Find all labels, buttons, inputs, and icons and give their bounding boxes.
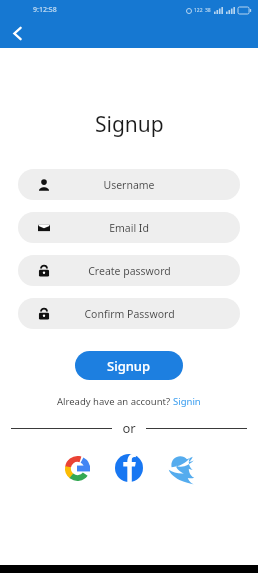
staticText: 122 <box>194 7 203 14</box>
staticText: Already have an account? <box>57 395 173 408</box>
staticText: 9:12:58 <box>33 5 57 15</box>
button[interactable]: Sign up with Google <box>60 451 94 485</box>
staticText: Create password <box>88 264 171 278</box>
staticText: Username <box>103 178 155 192</box>
button[interactable]: Username <box>18 169 240 200</box>
button[interactable]: Back <box>0 16 34 50</box>
staticText: Signin <box>173 395 201 408</box>
staticText: 38 <box>205 7 211 14</box>
button[interactable]: Sign up with Twitter <box>164 451 198 485</box>
button[interactable]: Signin <box>173 395 201 408</box>
button[interactable]: Create password <box>18 255 240 286</box>
button[interactable]: Sign up with Facebook <box>112 451 146 485</box>
staticText: Signup <box>107 357 151 375</box>
staticText: Email Id <box>109 221 149 235</box>
button[interactable]: Email Id <box>18 212 240 243</box>
staticText: Confirm Password <box>84 307 175 321</box>
button[interactable]: Signup <box>75 351 183 380</box>
staticText: Signup <box>95 110 164 139</box>
button[interactable]: Confirm Password <box>18 298 240 329</box>
staticText: or <box>122 419 136 437</box>
